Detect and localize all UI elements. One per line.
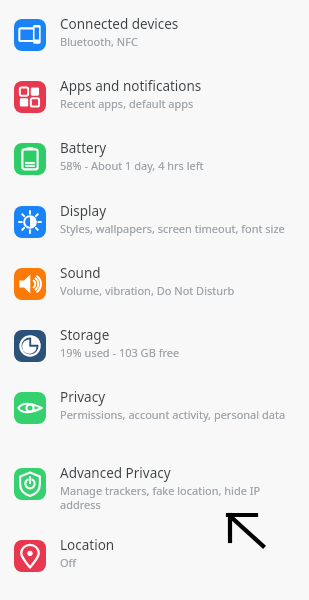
button[interactable]: Location — [0, 535, 309, 597]
staticText: Off — [60, 555, 77, 570]
staticText: Manage trackers, fake location, hide IP … — [60, 483, 295, 512]
button[interactable]: Storage — [0, 325, 309, 387]
staticText: Sound — [60, 264, 101, 282]
button[interactable]: Sound — [0, 263, 309, 325]
staticText: Privacy — [60, 388, 106, 406]
button[interactable]: Apps and notifications — [0, 76, 309, 138]
staticText: 58% - About 1 day, 4 hrs left — [60, 158, 204, 173]
staticText: Location — [60, 536, 115, 554]
staticText: 19% used - 103 GB free — [60, 345, 180, 360]
staticText: Permissions, account activity, personal … — [60, 407, 286, 422]
staticText: Connected devices — [60, 15, 179, 33]
staticText: Bluetooth, NFC — [60, 34, 138, 49]
staticText: Styles, wallpapers, screen timeout, font… — [60, 221, 285, 236]
staticText: Recent apps, default apps — [60, 96, 194, 111]
button[interactable]: Advanced Privacy — [0, 463, 309, 535]
staticText: Display — [60, 202, 107, 220]
staticText: Volume, vibration, Do Not Disturb — [60, 283, 235, 298]
staticText: Battery — [60, 139, 107, 157]
button[interactable]: Connected devices — [0, 14, 309, 76]
button[interactable]: Privacy — [0, 387, 309, 463]
staticText: Apps and notifications — [60, 77, 202, 95]
button[interactable]: Battery — [0, 138, 309, 201]
staticText: Storage — [60, 326, 110, 344]
staticText: Advanced Privacy — [60, 464, 171, 482]
button[interactable]: Display — [0, 201, 309, 263]
